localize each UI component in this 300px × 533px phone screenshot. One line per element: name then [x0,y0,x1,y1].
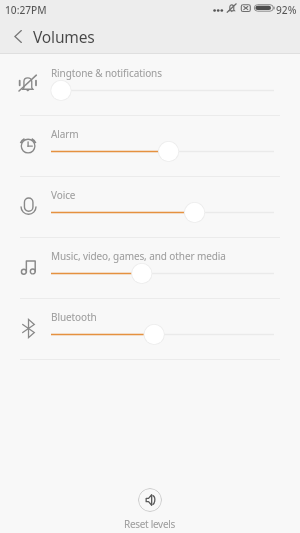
button[interactable]: Reset levels [124,488,176,531]
staticText: 10:27PM [5,3,47,17]
staticText: Music, video, games, and other media [51,249,226,263]
staticText: Reset levels [124,517,176,531]
staticText: Ringtone & notifications [51,66,162,80]
staticText: Volumes [33,26,95,47]
button[interactable]: Bluetooth [0,298,300,359]
button[interactable]: Ringtone & notifications [0,54,300,115]
button[interactable]: Back [0,20,36,53]
staticText: Alarm [51,127,79,141]
staticText: Bluetooth [51,310,97,324]
button[interactable]: Voice [0,176,300,237]
staticText: Voice [51,188,76,202]
button[interactable]: Music, video, games, and other media [0,237,300,298]
button[interactable]: Alarm [0,115,300,176]
staticText: 92% [276,3,297,17]
